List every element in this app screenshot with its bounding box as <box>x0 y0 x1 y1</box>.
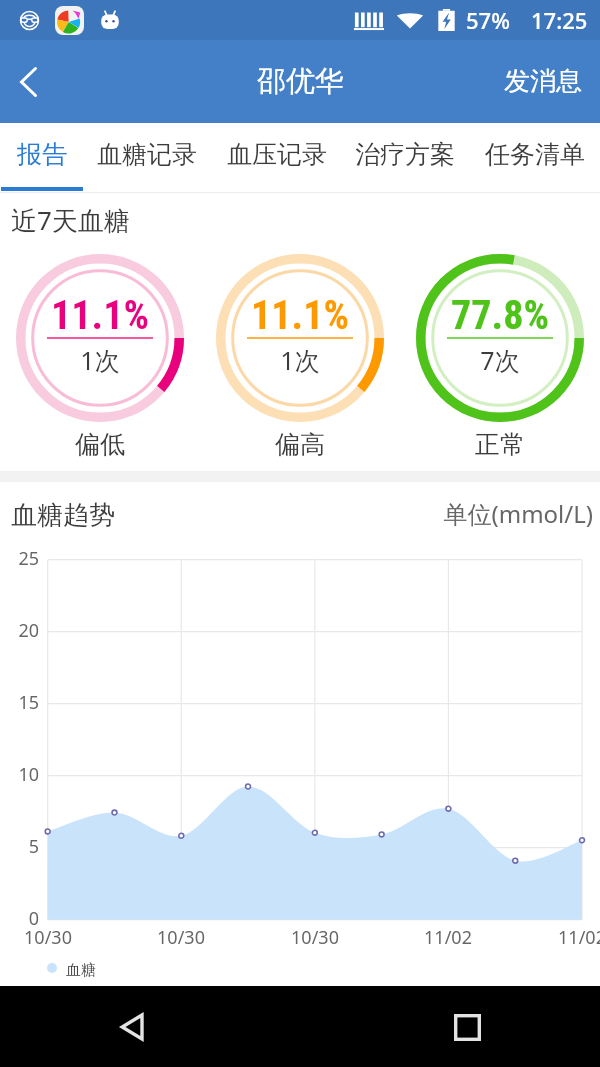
staticText: 单位(mmol/L) <box>0 497 593 530</box>
staticText: 正常 <box>440 429 560 460</box>
staticText: 10/30 <box>21 925 75 950</box>
button[interactable]: 治疗方案 <box>345 123 465 193</box>
staticText: 25 <box>8 546 39 571</box>
staticText: 11/02 <box>555 925 600 950</box>
staticText: 治疗方案 <box>355 139 455 170</box>
staticText: 10 <box>8 762 39 787</box>
staticText: 报告 <box>17 139 67 170</box>
staticText: 血糖趋势 <box>11 499 115 532</box>
button[interactable]: 任务清单 <box>475 123 595 193</box>
staticText: 1次 <box>40 343 160 377</box>
staticText: 发消息 <box>504 65 582 98</box>
staticText: 血压记录 <box>227 139 327 170</box>
staticText: 任务清单 <box>485 139 585 170</box>
staticText: 偏高 <box>240 429 360 460</box>
staticText: 近7天血糖 <box>11 202 130 238</box>
staticText: 10/30 <box>154 925 208 950</box>
staticText: 10/30 <box>288 925 342 950</box>
staticText: 11/02 <box>421 925 475 950</box>
button[interactable]: 血压记录 <box>217 123 337 193</box>
button[interactable]: 发消息 <box>486 40 600 123</box>
staticText: 偏低 <box>40 429 160 460</box>
button[interactable]: 血糖记录 <box>87 123 207 193</box>
staticText: 1次 <box>240 343 360 377</box>
staticText: 77.8% <box>430 292 570 339</box>
button[interactable]: Home <box>437 997 497 1057</box>
staticText: 15 <box>8 690 39 715</box>
button[interactable]: 报告 <box>0 123 84 193</box>
staticText: 5 <box>8 834 39 859</box>
staticText: 邵优华 <box>257 63 344 100</box>
button[interactable]: Back <box>0 54 56 110</box>
button[interactable]: Back <box>103 997 163 1057</box>
staticText: 血糖 <box>66 961 96 980</box>
staticText: 血糖记录 <box>97 139 197 170</box>
staticText: 17:25 <box>531 5 588 35</box>
staticText: 7次 <box>440 343 560 377</box>
staticText: 0 <box>8 906 39 931</box>
staticText: 20 <box>8 618 39 643</box>
staticText: 11.1% <box>230 292 370 339</box>
staticText: 57% <box>466 5 510 35</box>
staticText: 11.1% <box>30 292 170 339</box>
